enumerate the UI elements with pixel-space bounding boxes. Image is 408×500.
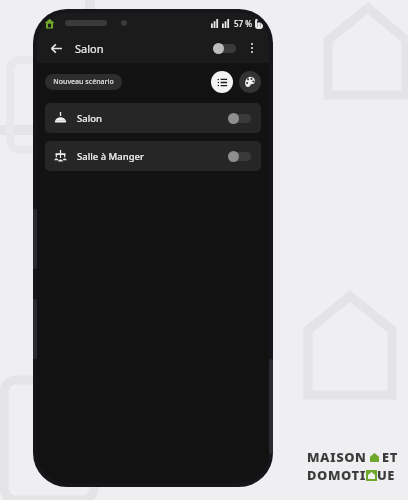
button[interactable]: Salle à Manger xyxy=(45,141,261,171)
staticText: DOMOTI xyxy=(307,466,366,484)
staticText: Salon xyxy=(77,112,102,125)
staticText: MAISON xyxy=(307,448,367,466)
button[interactable]: More options xyxy=(243,39,261,57)
button[interactable]: Color palette xyxy=(239,71,261,93)
button[interactable]: Toggle Salon xyxy=(228,110,252,126)
staticText: 57 % xyxy=(234,18,253,29)
staticText: UE xyxy=(377,466,395,484)
staticText: Salon xyxy=(75,41,104,56)
button[interactable]: Salon xyxy=(45,103,261,133)
button[interactable]: Back xyxy=(45,37,67,59)
staticText: Nouveau scénario xyxy=(53,77,114,87)
button[interactable]: Toggle room xyxy=(213,40,237,56)
staticText: ET xyxy=(382,448,398,466)
staticText: Salle à Manger xyxy=(77,150,145,163)
button[interactable]: Toggle Salle à Manger xyxy=(228,148,252,164)
button[interactable]: List view xyxy=(211,71,233,93)
button[interactable]: Nouveau scénario xyxy=(45,74,122,90)
